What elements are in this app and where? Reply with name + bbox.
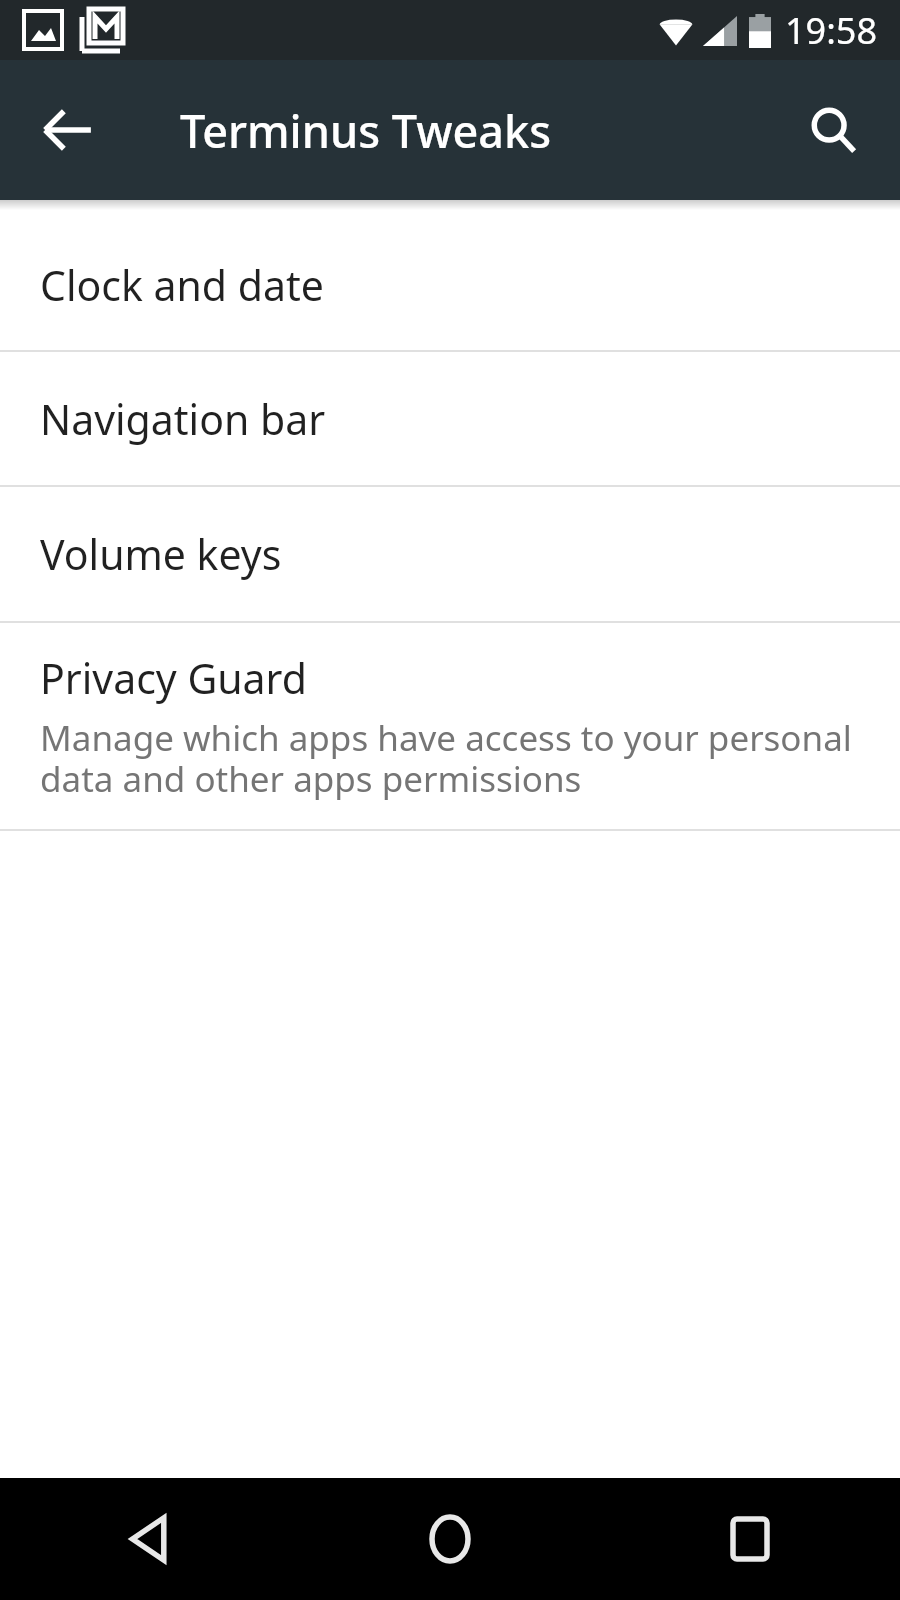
button[interactable]: Back xyxy=(12,74,124,186)
staticText: Terminus Tweaks xyxy=(180,100,552,161)
button[interactable]: Privacy Guard xyxy=(0,623,900,829)
button[interactable]: Volume keys xyxy=(0,487,900,621)
staticText: Volume keys xyxy=(40,526,282,582)
button[interactable]: Clock and date xyxy=(0,219,900,350)
staticText: Manage which apps have access to your pe… xyxy=(40,714,860,802)
button[interactable]: Navigation bar xyxy=(0,352,900,485)
button[interactable]: Search xyxy=(778,75,888,185)
staticText: Privacy Guard xyxy=(40,650,307,706)
staticText: 19:58 xyxy=(785,6,878,55)
staticText: Navigation bar xyxy=(40,391,326,447)
button[interactable]: Recent apps xyxy=(600,1478,900,1600)
button[interactable]: Home xyxy=(300,1478,600,1600)
staticText: Clock and date xyxy=(40,257,324,313)
button[interactable]: Back xyxy=(0,1478,300,1600)
